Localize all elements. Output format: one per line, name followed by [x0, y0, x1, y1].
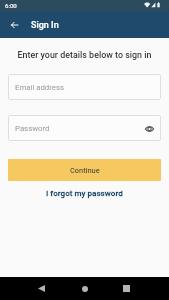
button[interactable]: Show password	[143, 122, 156, 135]
staticText: Continue	[70, 166, 100, 175]
button[interactable]: Password	[8, 115, 161, 141]
staticText: Password	[15, 124, 50, 133]
staticText: Sign In	[31, 20, 59, 31]
staticText: I forgot my password	[46, 188, 123, 197]
button[interactable]: Email address	[8, 74, 161, 100]
button[interactable]: I forgot my password	[43, 185, 126, 200]
button[interactable]: Continue	[8, 159, 161, 181]
button[interactable]: Back	[29, 277, 53, 300]
staticText: Enter your details below to sign in	[0, 50, 169, 60]
button[interactable]: Home	[73, 277, 97, 300]
button[interactable]: Recent apps	[114, 277, 138, 300]
staticText: Email address	[15, 83, 65, 92]
button[interactable]: Back	[2, 13, 26, 37]
staticText: 6:00	[5, 2, 17, 9]
